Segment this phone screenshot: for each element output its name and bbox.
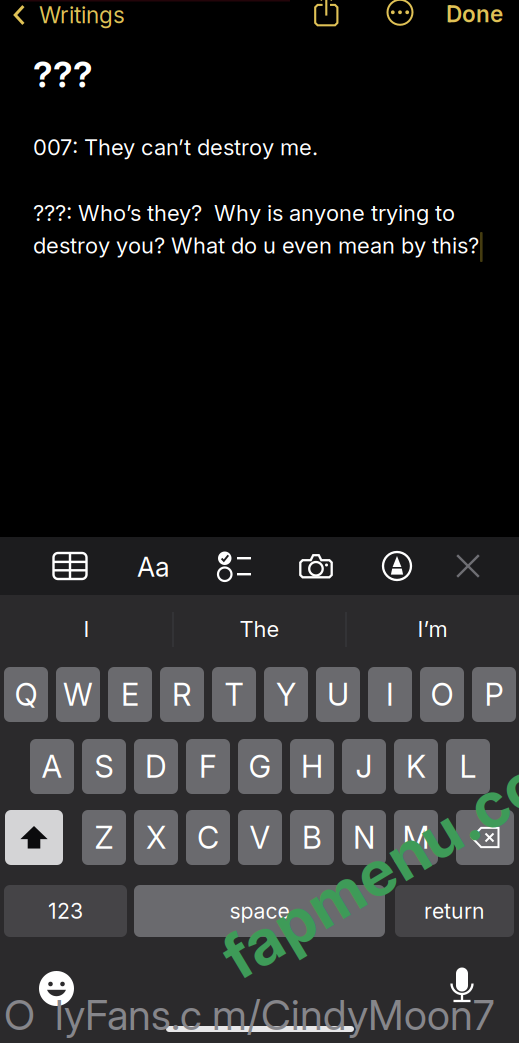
staticText: O — [430, 676, 453, 713]
button[interactable]: P — [472, 667, 516, 722]
staticText: V — [249, 819, 270, 856]
staticText: Writings — [39, 1, 125, 29]
staticText: D — [145, 748, 167, 785]
staticText: The — [239, 616, 279, 642]
button[interactable]: E — [108, 667, 152, 722]
button[interactable]: L — [446, 739, 490, 794]
staticText: W — [63, 676, 93, 713]
button[interactable]: C — [186, 810, 230, 865]
button[interactable]: I’m — [346, 601, 519, 657]
button[interactable]: Emoji — [39, 971, 74, 1006]
staticText: G — [248, 748, 271, 785]
staticText: return — [424, 898, 485, 924]
staticText: Done — [446, 0, 503, 28]
button[interactable]: Checklist — [218, 551, 251, 581]
button[interactable]: Share — [314, 0, 339, 26]
button[interactable]: R — [160, 667, 204, 722]
staticText: J — [355, 748, 372, 785]
staticText: T — [224, 676, 243, 713]
staticText: Y — [276, 676, 296, 713]
staticText: I — [386, 676, 394, 713]
button[interactable]: V — [238, 810, 282, 865]
button[interactable]: J — [342, 739, 386, 794]
button[interactable]: U — [316, 667, 360, 722]
staticText: A — [41, 748, 62, 785]
staticText: I’m — [417, 616, 447, 642]
staticText: H — [301, 748, 323, 785]
button[interactable]: Z — [82, 810, 126, 865]
staticText: P — [484, 676, 503, 713]
button[interactable]: D — [134, 739, 178, 794]
staticText: U — [327, 676, 349, 713]
staticText: fapmenu.com — [198, 818, 519, 892]
button[interactable]: Aa — [137, 551, 170, 583]
button[interactable]: Q — [4, 667, 48, 722]
button[interactable]: B — [290, 810, 334, 865]
staticText: Aa — [137, 551, 170, 583]
button[interactable]: A — [30, 739, 74, 794]
button[interactable]: Close toolbar — [456, 554, 480, 578]
button[interactable]: F — [186, 739, 230, 794]
staticText: N — [353, 819, 375, 856]
staticText: R — [172, 676, 192, 713]
button[interactable]: return — [395, 885, 514, 937]
staticText: M — [402, 819, 429, 856]
button[interactable]: Writings — [0, 0, 125, 31]
button[interactable]: O — [420, 667, 464, 722]
button[interactable]: The — [173, 601, 346, 657]
button[interactable]: 123 — [4, 885, 127, 937]
staticText: space — [229, 898, 289, 924]
button[interactable]: Done — [446, 0, 503, 32]
button[interactable]: Dictate — [448, 967, 476, 1003]
staticText: ??? — [33, 54, 93, 96]
staticText: L — [459, 748, 476, 785]
button[interactable]: Camera — [299, 553, 333, 579]
button[interactable]: Table — [53, 553, 86, 579]
button[interactable]: Delete — [456, 810, 514, 865]
button[interactable]: Markup — [382, 551, 412, 581]
button[interactable]: K — [394, 739, 438, 794]
staticText: Z — [94, 819, 113, 856]
button[interactable]: T — [212, 667, 256, 722]
staticText: K — [406, 748, 426, 785]
button[interactable]: I — [368, 667, 412, 722]
button[interactable]: Y — [264, 667, 308, 722]
button[interactable]: W — [56, 667, 100, 722]
staticText: Q — [14, 676, 37, 713]
staticText: X — [146, 819, 166, 856]
staticText: C — [197, 819, 219, 856]
staticText: I — [83, 616, 89, 642]
staticText: S — [94, 748, 113, 785]
staticText: E — [121, 676, 139, 713]
staticText: ???: Who’s they? Why is anyone trying to… — [33, 200, 479, 259]
staticText: 123 — [48, 898, 83, 924]
button[interactable]: N — [342, 810, 386, 865]
staticText: B — [302, 819, 322, 856]
button[interactable]: Shift — [5, 810, 63, 865]
button[interactable]: space — [134, 885, 385, 937]
button[interactable]: I — [0, 601, 173, 657]
button[interactable]: More — [387, 0, 413, 25]
button[interactable]: H — [290, 739, 334, 794]
button[interactable]: X — [134, 810, 178, 865]
button[interactable]: S — [82, 739, 126, 794]
button[interactable]: M — [394, 810, 438, 865]
staticText: 007: They can’t destroy me. — [33, 134, 318, 160]
staticText: O lyFans.c m/CindyMoon7 — [4, 990, 494, 1040]
button[interactable]: G — [238, 739, 282, 794]
staticText: F — [199, 748, 217, 785]
